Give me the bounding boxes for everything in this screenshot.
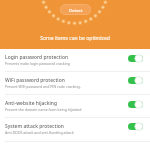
staticText: WiFi password protection: [5, 77, 65, 84]
staticText: Detect: [69, 7, 83, 13]
button[interactable]: Toggle on: [128, 122, 143, 131]
button[interactable]: WiFi password protection: [0, 72, 150, 95]
staticText: System attack protection: [5, 123, 64, 130]
button[interactable]: Toggle on: [128, 54, 143, 63]
button[interactable]: Detect: [61, 5, 90, 14]
staticText: Some items can be optimized: [40, 35, 110, 42]
staticText: Anti-website hijacking: [5, 100, 58, 107]
button[interactable]: System attack protection: [0, 118, 150, 142]
button[interactable]: Anti-website hijacking: [0, 95, 150, 118]
staticText: Prevents make login password cracking: [5, 61, 70, 66]
button[interactable]: Toggle on: [128, 76, 143, 85]
button[interactable]: Toggle on: [128, 100, 143, 109]
staticText: Anti-DDOS attack and anti-flooding attac…: [5, 130, 74, 135]
button[interactable]: Login password protection: [0, 49, 150, 72]
staticText: Login password protection: [5, 54, 69, 61]
staticText: Prevent WiFi password and PIN code crack…: [5, 84, 81, 89]
staticText: Prevent the domain name form being hijac…: [5, 107, 82, 112]
